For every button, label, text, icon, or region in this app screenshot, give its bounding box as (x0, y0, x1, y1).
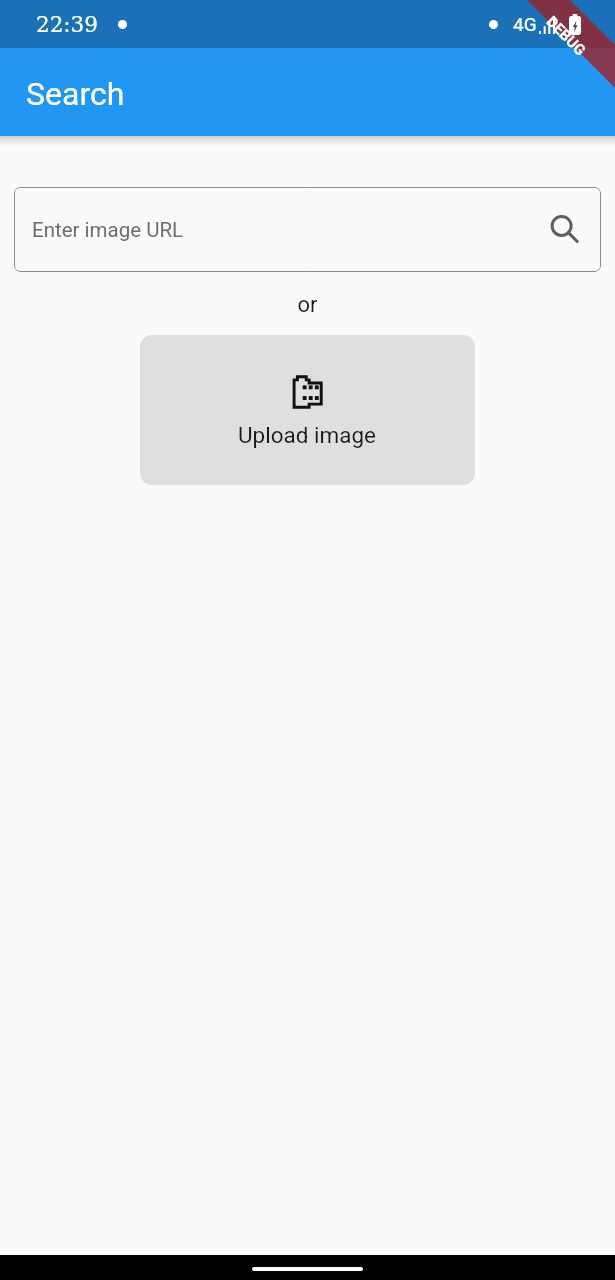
staticText: DEBUG (543, 13, 589, 59)
staticText: 4G (513, 13, 537, 35)
button[interactable]: Upload image (140, 335, 475, 485)
staticText: Enter image URL (32, 218, 184, 242)
staticText: Search (26, 75, 125, 113)
staticText: or (0, 292, 615, 318)
staticText: Upload image (238, 422, 377, 448)
button[interactable]: Enter image URL (14, 187, 601, 272)
button[interactable]: Search (545, 210, 585, 250)
staticText: 22:39 (36, 12, 98, 37)
